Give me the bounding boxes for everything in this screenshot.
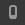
button[interactable]: Level bbox=[9, 5, 17, 19]
